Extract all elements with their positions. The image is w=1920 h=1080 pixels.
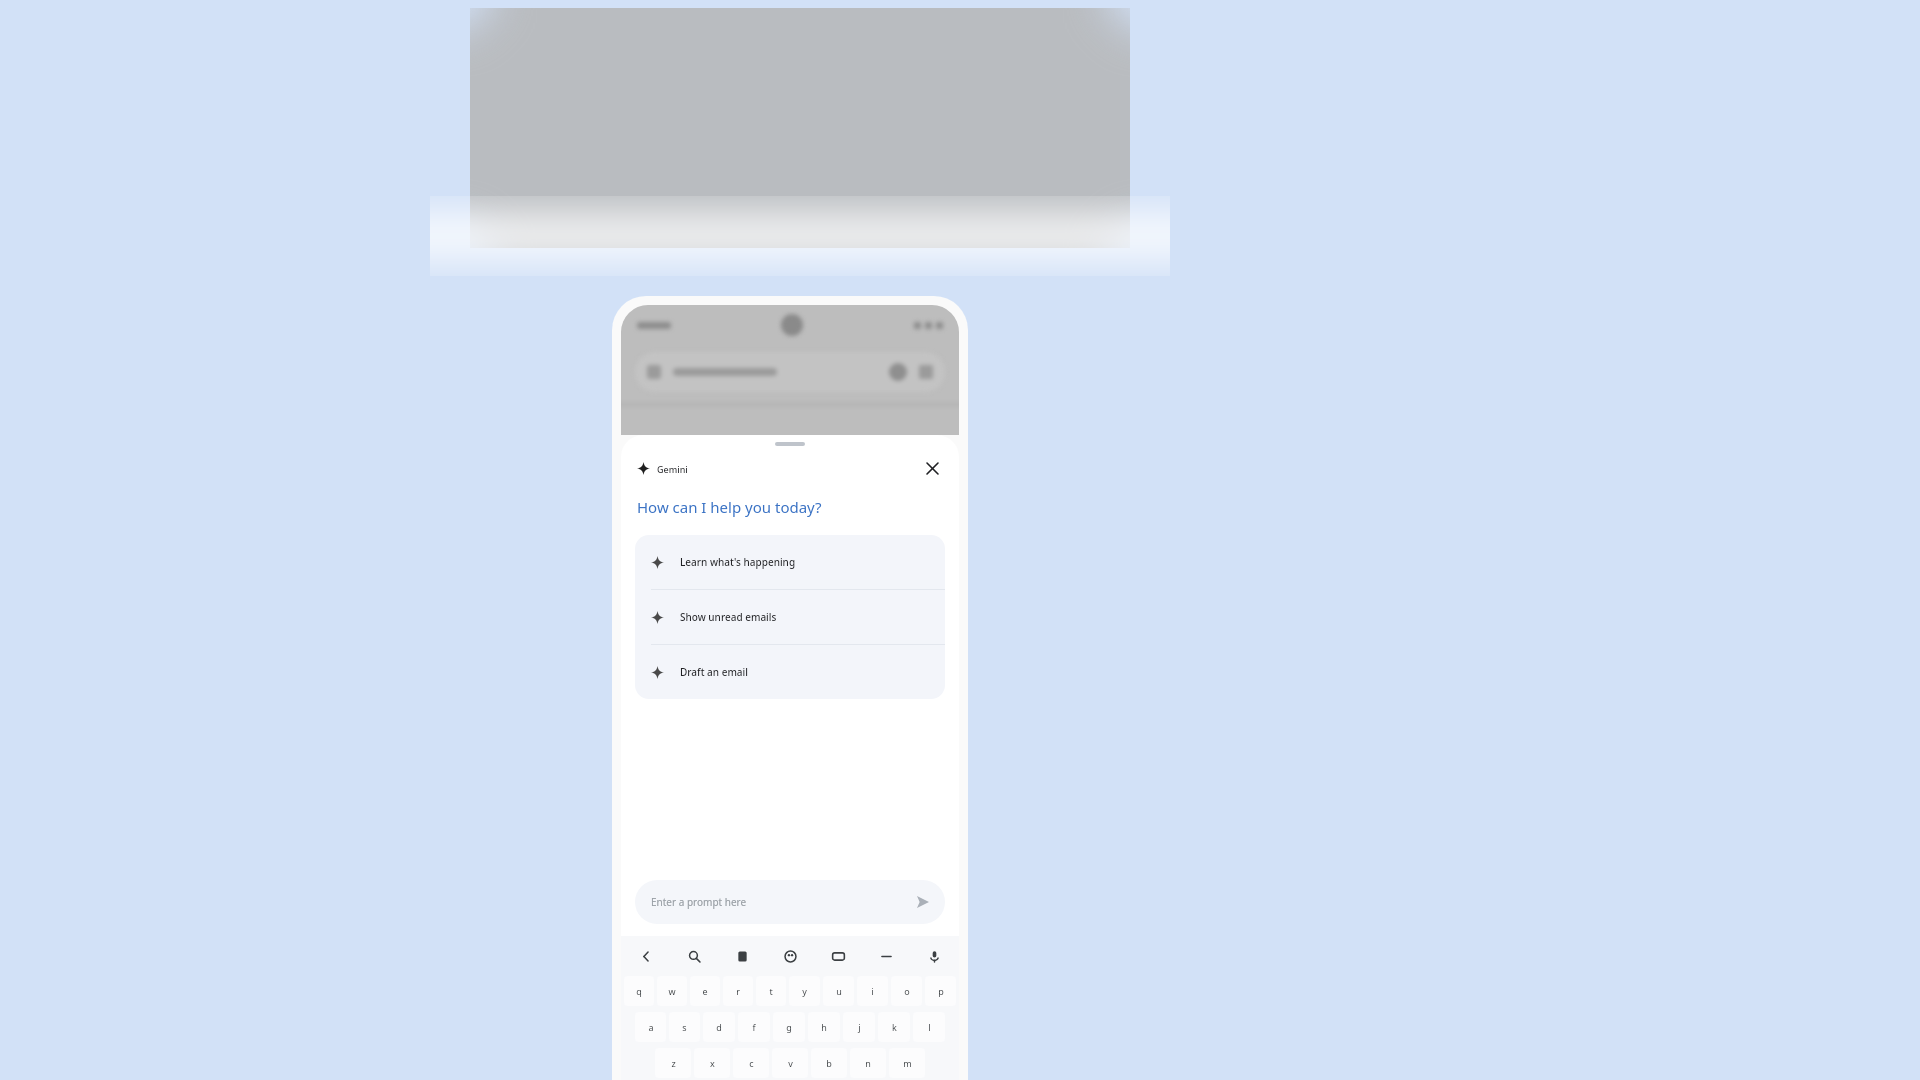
staticText: e [702, 985, 708, 997]
button[interactable]: q [624, 976, 654, 1006]
button[interactable]: z [655, 1048, 691, 1078]
button[interactable]: Voice input [921, 943, 947, 969]
staticText: k [892, 1021, 897, 1033]
button[interactable]: Draft an email [635, 645, 945, 699]
staticText: Enter a prompt here [651, 895, 747, 909]
button[interactable]: n [850, 1048, 886, 1078]
button[interactable]: Gemini [637, 462, 688, 475]
staticText: o [904, 985, 910, 997]
button[interactable]: GIF [825, 943, 851, 969]
staticText: How can I help you today? [637, 497, 822, 517]
button[interactable]: j [843, 1012, 875, 1042]
staticText: g [786, 1021, 792, 1033]
button[interactable]: r [723, 976, 753, 1006]
button[interactable]: s [669, 1012, 700, 1042]
staticText: Draft an email [680, 665, 748, 679]
button[interactable]: a [635, 1012, 666, 1042]
button[interactable]: Sticker [777, 943, 803, 969]
staticText: s [682, 1021, 687, 1033]
button[interactable]: p [925, 976, 956, 1006]
staticText: v [788, 1057, 793, 1069]
button[interactable]: Show unread emails [635, 590, 945, 644]
staticText: p [938, 985, 944, 997]
staticText: u [836, 985, 842, 997]
staticText: Learn what's happening [680, 555, 796, 569]
staticText: m [903, 1057, 912, 1069]
staticText: d [716, 1021, 722, 1033]
staticText: b [826, 1057, 832, 1069]
button[interactable]: Clipboard [729, 943, 755, 969]
staticText: n [865, 1057, 871, 1069]
button[interactable]: b [811, 1048, 847, 1078]
staticText: y [802, 985, 807, 997]
button[interactable]: l [913, 1012, 945, 1042]
staticText: Gemini [657, 463, 688, 475]
staticText: i [871, 985, 874, 997]
staticText: x [710, 1057, 715, 1069]
button[interactable]: Learn what's happening [635, 535, 945, 589]
button[interactable]: g [773, 1012, 805, 1042]
staticText: a [648, 1021, 654, 1033]
button[interactable]: i [857, 976, 888, 1006]
button[interactable]: v [772, 1048, 808, 1078]
staticText: q [636, 985, 642, 997]
staticText: c [749, 1057, 754, 1069]
button[interactable]: u [823, 976, 854, 1006]
button[interactable]: Enter a prompt here [635, 880, 945, 924]
staticText: z [671, 1057, 676, 1069]
button[interactable]: k [878, 1012, 910, 1042]
staticText: r [736, 985, 740, 997]
staticText: w [668, 985, 676, 997]
button[interactable]: Close [921, 457, 943, 479]
button[interactable]: x [694, 1048, 730, 1078]
other: Send [913, 892, 933, 912]
button[interactable]: h [808, 1012, 840, 1042]
button[interactable]: f [738, 1012, 770, 1042]
staticText: j [858, 1021, 861, 1033]
button[interactable]: c [733, 1048, 769, 1078]
button[interactable]: More [873, 943, 899, 969]
button[interactable]: w [657, 976, 687, 1006]
button[interactable]: Back [633, 943, 659, 969]
button[interactable]: o [891, 976, 922, 1006]
button[interactable]: e [690, 976, 720, 1006]
button[interactable]: t [756, 976, 786, 1006]
staticText: l [928, 1021, 931, 1033]
button[interactable]: y [789, 976, 820, 1006]
button[interactable]: Search [681, 943, 707, 969]
staticText: f [752, 1021, 756, 1033]
staticText: t [769, 985, 773, 997]
button[interactable]: d [703, 1012, 735, 1042]
staticText: Show unread emails [680, 610, 777, 624]
staticText: h [821, 1021, 827, 1033]
button[interactable]: m [889, 1048, 925, 1078]
